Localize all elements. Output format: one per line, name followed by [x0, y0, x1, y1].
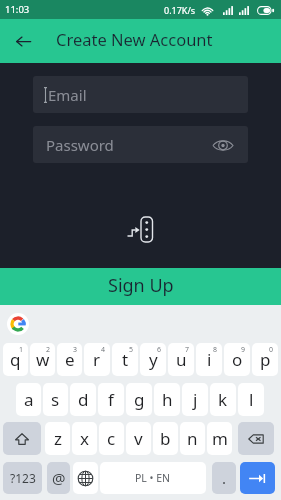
- staticText: j: [193, 388, 198, 411]
- staticText: x: [80, 427, 89, 450]
- staticText: 4: [101, 345, 106, 355]
- button[interactable]: Show password: [206, 128, 240, 162]
- button[interactable]: c: [99, 422, 124, 455]
- staticText: z: [54, 427, 62, 450]
- staticText: t: [122, 348, 129, 371]
- button[interactable]: Sign Up: [0, 268, 281, 305]
- staticText: u: [176, 348, 187, 371]
- button[interactable]: Backspace: [238, 422, 274, 455]
- button[interactable]: Shift: [3, 422, 41, 455]
- button[interactable]: ?123: [3, 462, 42, 494]
- staticText: 11:03: [5, 3, 30, 16]
- staticText: Password: [46, 135, 114, 155]
- staticText: i: [207, 348, 212, 371]
- staticText: ?123: [10, 470, 36, 486]
- staticText: @: [52, 468, 66, 488]
- button[interactable]: x: [72, 422, 97, 455]
- staticText: 8: [213, 345, 218, 355]
- staticText: e: [65, 348, 75, 371]
- button[interactable]: @: [47, 462, 70, 494]
- staticText: 1: [19, 345, 24, 355]
- staticText: q: [10, 348, 21, 371]
- button[interactable]: s: [43, 383, 68, 416]
- button[interactable]: Space: [100, 462, 206, 494]
- staticText: b: [160, 427, 171, 450]
- staticText: g: [134, 388, 145, 411]
- staticText: Email: [48, 85, 87, 105]
- staticText: 0.17K/s: [164, 4, 196, 16]
- button[interactable]: h: [154, 383, 180, 416]
- button[interactable]: r: [84, 343, 110, 376]
- staticText: o: [232, 348, 243, 371]
- button[interactable]: v: [126, 422, 151, 455]
- button[interactable]: k: [210, 383, 236, 416]
- button[interactable]: u: [168, 343, 194, 376]
- staticText: 6: [157, 345, 162, 355]
- staticText: v: [134, 427, 143, 450]
- staticText: Sign Up: [108, 273, 174, 298]
- button[interactable]: b: [153, 422, 178, 455]
- staticText: n: [187, 427, 198, 450]
- staticText: 3: [73, 345, 78, 355]
- button[interactable]: m: [207, 422, 232, 455]
- staticText: 0: [269, 345, 274, 355]
- button[interactable]: Language: [73, 462, 98, 494]
- staticText: .: [222, 468, 227, 488]
- staticText: m: [212, 427, 228, 450]
- staticText: Create New Account: [56, 28, 213, 50]
- staticText: l: [249, 388, 254, 411]
- button[interactable]: w: [30, 343, 55, 376]
- button[interactable]: j: [182, 383, 208, 416]
- button[interactable]: e: [57, 343, 82, 376]
- button[interactable]: f: [98, 383, 124, 416]
- staticText: 9: [241, 345, 246, 355]
- button[interactable]: Google: [7, 313, 29, 335]
- staticText: k: [218, 388, 228, 411]
- staticText: c: [107, 427, 116, 450]
- staticText: 2: [46, 345, 51, 355]
- staticText: r: [93, 348, 101, 371]
- staticText: a: [24, 388, 34, 411]
- button[interactable]: Back: [8, 26, 38, 56]
- button[interactable]: i: [196, 343, 222, 376]
- button[interactable]: g: [126, 383, 152, 416]
- button[interactable]: z: [45, 422, 70, 455]
- button[interactable]: q: [3, 343, 28, 376]
- button[interactable]: .: [212, 462, 236, 494]
- button[interactable]: d: [70, 383, 96, 416]
- button[interactable]: o: [224, 343, 250, 376]
- staticText: h: [162, 388, 173, 411]
- staticText: s: [51, 388, 60, 411]
- staticText: d: [78, 388, 89, 411]
- button[interactable]: Email: [33, 76, 248, 113]
- staticText: w: [36, 348, 50, 371]
- staticText: f: [108, 388, 114, 411]
- button[interactable]: y: [140, 343, 166, 376]
- staticText: 5: [129, 345, 134, 355]
- button[interactable]: a: [16, 383, 41, 416]
- button[interactable]: p: [252, 343, 278, 376]
- staticText: PL • EN: [135, 471, 171, 485]
- button[interactable]: n: [180, 422, 205, 455]
- button[interactable]: Enter: [240, 462, 275, 494]
- staticText: p: [260, 348, 271, 371]
- button[interactable]: Password: [33, 126, 248, 163]
- staticText: y: [149, 348, 158, 371]
- button[interactable]: l: [238, 383, 264, 416]
- button[interactable]: t: [112, 343, 138, 376]
- staticText: 7: [185, 345, 190, 355]
